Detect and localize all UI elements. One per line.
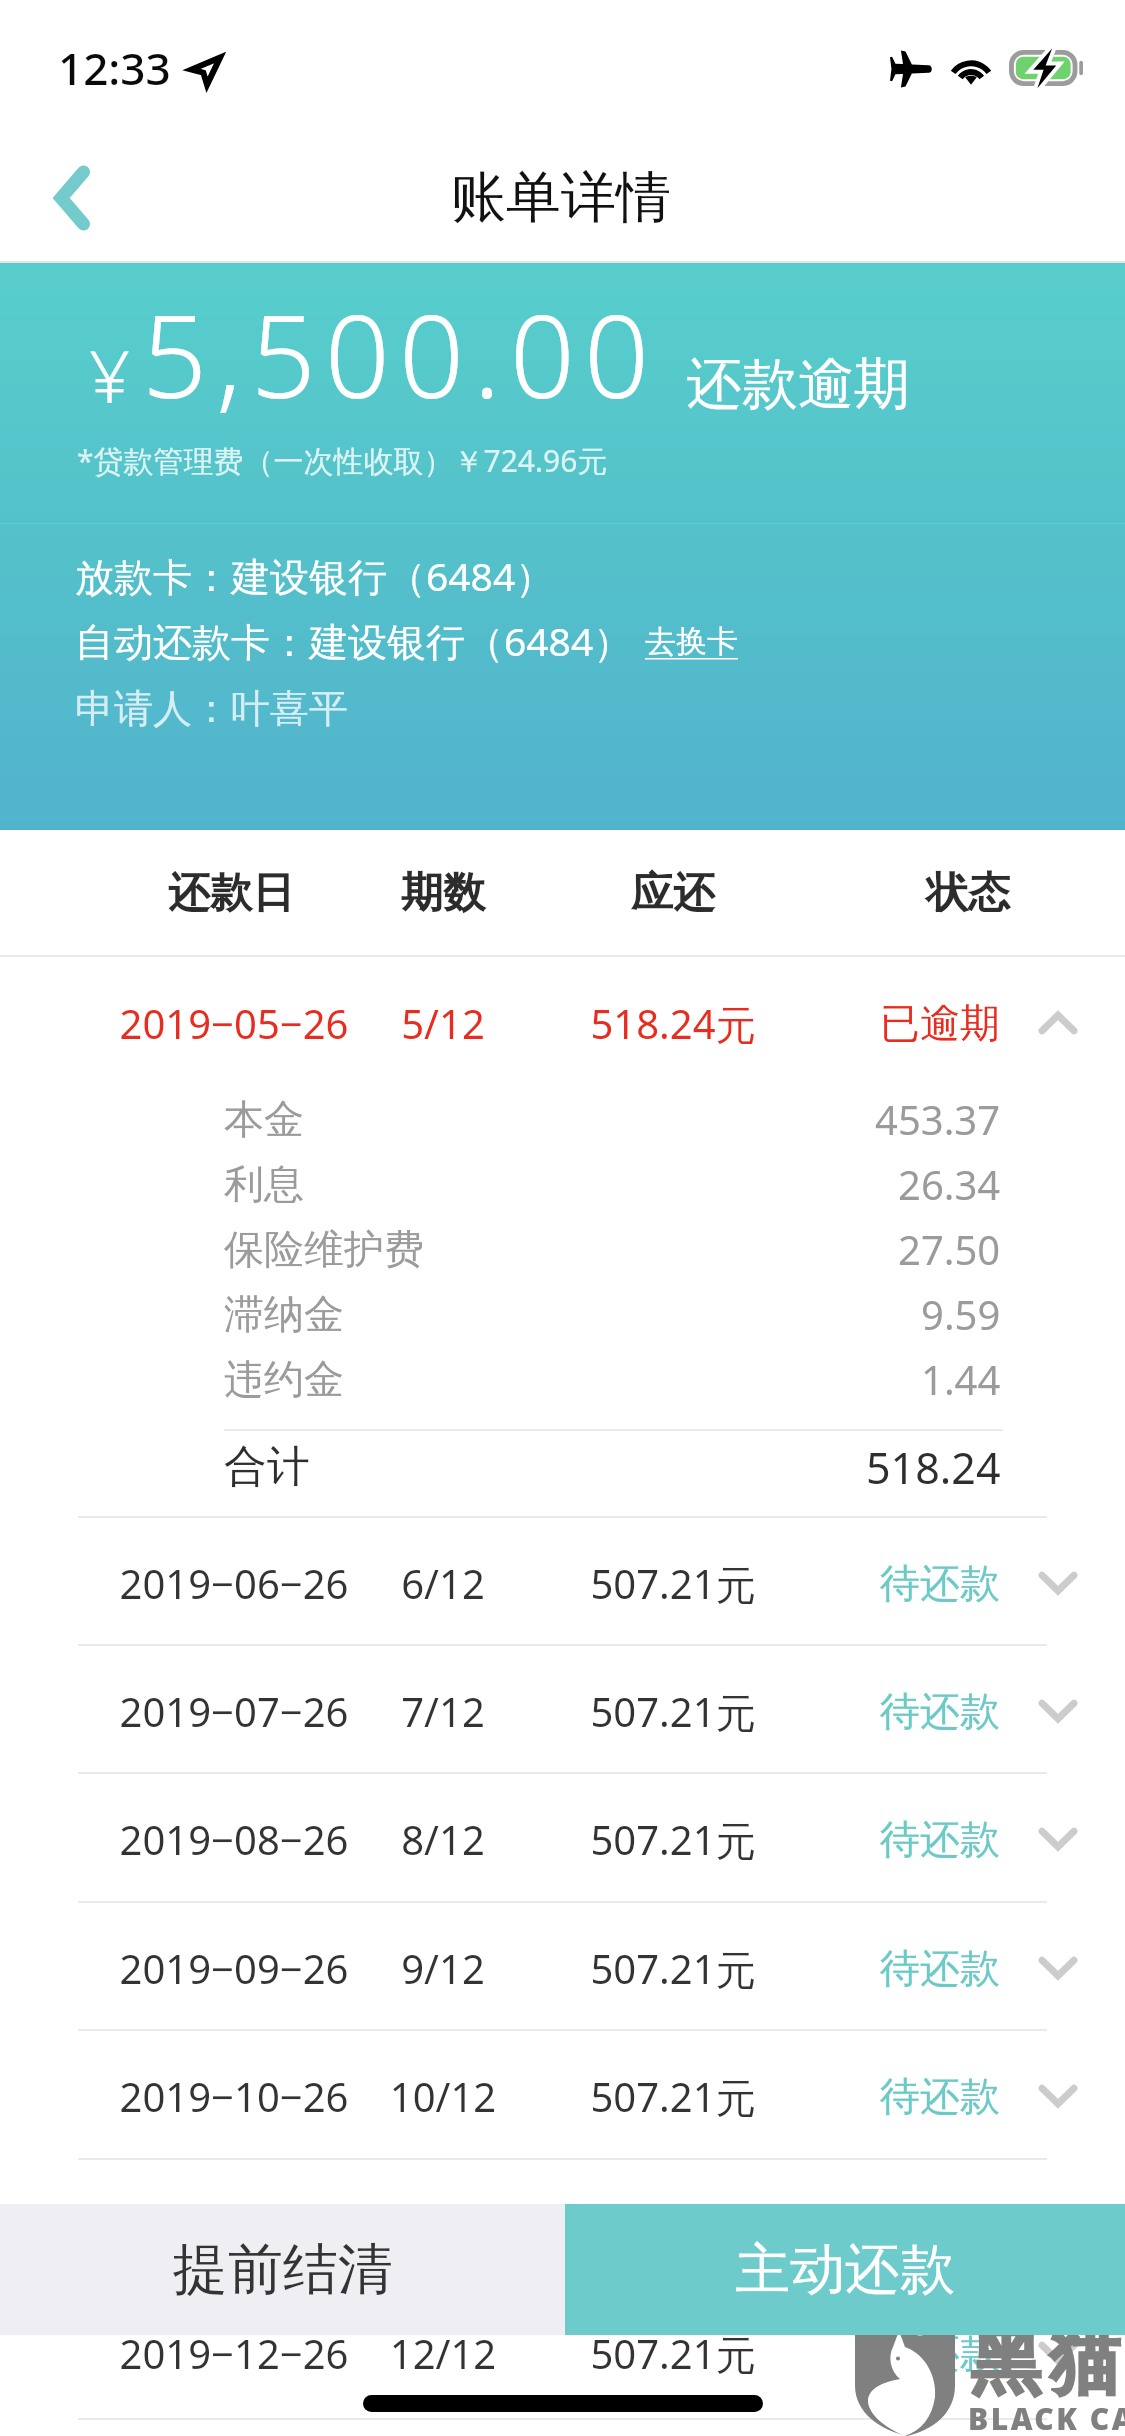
staticText: 11/12 [143, 2198, 743, 2252]
staticText: 2019−09−26 [0, 1941, 534, 1995]
button[interactable]: 2019−12−26 [0, 2286, 1125, 2418]
staticText: 507.21元 [373, 1556, 973, 1611]
button[interactable]: 去换卡 [645, 622, 738, 661]
staticText: 507.21元 [373, 1812, 973, 1867]
staticText: 10/12 [143, 2069, 743, 2123]
button[interactable]: 主动还款 [565, 2204, 1125, 2335]
staticText: 待还款 [640, 1558, 1125, 1608]
staticText: 9/12 [143, 1941, 743, 1995]
staticText: 5/12 [143, 996, 743, 1050]
staticText: 提前结清 [173, 2235, 393, 2304]
staticText: 2019−05−26 [0, 996, 534, 1050]
staticText: 还款逾期 [686, 349, 910, 420]
button[interactable]: 2019−11−26 [0, 2158, 1125, 2290]
staticText: 518.24 [866, 1438, 1001, 1497]
staticText: 5,500.00 [142, 276, 659, 431]
staticText: 已逾期 [640, 998, 1125, 1048]
staticText: 待还款 [640, 2071, 1125, 2121]
button[interactable]: 2019−06−26 [0, 1516, 1125, 1648]
button[interactable]: 提前结清 [0, 2204, 565, 2335]
staticText: 518.24元 [373, 996, 973, 1051]
staticText: 8/12 [143, 1812, 743, 1866]
staticText: ¥ [89, 326, 131, 424]
staticText: 保险维护费 [224, 1224, 424, 1274]
staticText: 2019−08−26 [0, 1812, 534, 1866]
staticText: 待还款 [640, 1814, 1125, 1864]
button[interactable]: 2019−10−26 [0, 2029, 1125, 2161]
staticText: 应还 [373, 867, 973, 920]
staticText: 507.21元 [373, 2326, 973, 2381]
button[interactable]: 2019−07−26 [0, 1644, 1125, 1776]
staticText: 滞纳金 [224, 1289, 344, 1339]
staticText: 待还款 [640, 2200, 1125, 2250]
staticText: 利息 [224, 1159, 304, 1209]
staticText: BLACK CAT [968, 2398, 1125, 2436]
staticText: 2019−06−26 [0, 1556, 534, 1610]
button[interactable]: 2019−08−26 [0, 1772, 1125, 1904]
staticText: 1.44 [921, 1352, 1001, 1406]
staticText: *贷款管理费（一次性收取）￥724.96元 [77, 440, 608, 481]
staticText: 状态 [668, 867, 1125, 920]
staticText: 去换卡 [645, 622, 738, 661]
staticText: 期数 [143, 867, 743, 920]
staticText: 507.21元 [373, 1684, 973, 1739]
button[interactable]: 2019−05−26 [0, 956, 1125, 1090]
staticText: 2019−11−26 [0, 2198, 534, 2252]
staticText: 违约金 [224, 1354, 344, 1404]
staticText: 待还款 [640, 1686, 1125, 1736]
staticText: 507.21元 [373, 1941, 973, 1996]
staticText: 2019−10−26 [0, 2069, 534, 2123]
staticText: 本金 [224, 1094, 304, 1144]
staticText: 6/12 [143, 1556, 743, 1610]
staticText: 453.37 [875, 1092, 1001, 1146]
staticText: 2019−12−26 [0, 2326, 534, 2380]
staticText: 放款卡：建设银行（6484） [75, 549, 555, 602]
staticText: 待还款 [640, 2328, 1125, 2378]
staticText: 待还款 [640, 1943, 1125, 1993]
staticText: 主动还款 [735, 2235, 955, 2304]
button[interactable]: Back [0, 132, 150, 263]
button[interactable]: 2019−09−26 [0, 1901, 1125, 2033]
staticText: 黑猫 [966, 2320, 1124, 2408]
staticText: 12:33 [58, 38, 171, 98]
staticText: 自动还款卡：建设银行（6484） [75, 614, 633, 667]
staticText: 2019−07−26 [0, 1684, 534, 1738]
staticText: 账单详情 [261, 163, 861, 232]
staticText: 12/12 [143, 2326, 743, 2380]
staticText: 507.21元 [373, 2198, 973, 2253]
staticText: 507.21元 [373, 2069, 973, 2124]
staticText: 申请人：叶喜平 [75, 684, 348, 733]
staticText: 9.59 [921, 1287, 1001, 1341]
staticText: 27.50 [898, 1222, 1001, 1276]
staticText: 26.34 [898, 1157, 1001, 1211]
staticText: 合计 [224, 1440, 310, 1494]
staticText: 还款日 [0, 867, 531, 920]
staticText: 7/12 [143, 1684, 743, 1738]
